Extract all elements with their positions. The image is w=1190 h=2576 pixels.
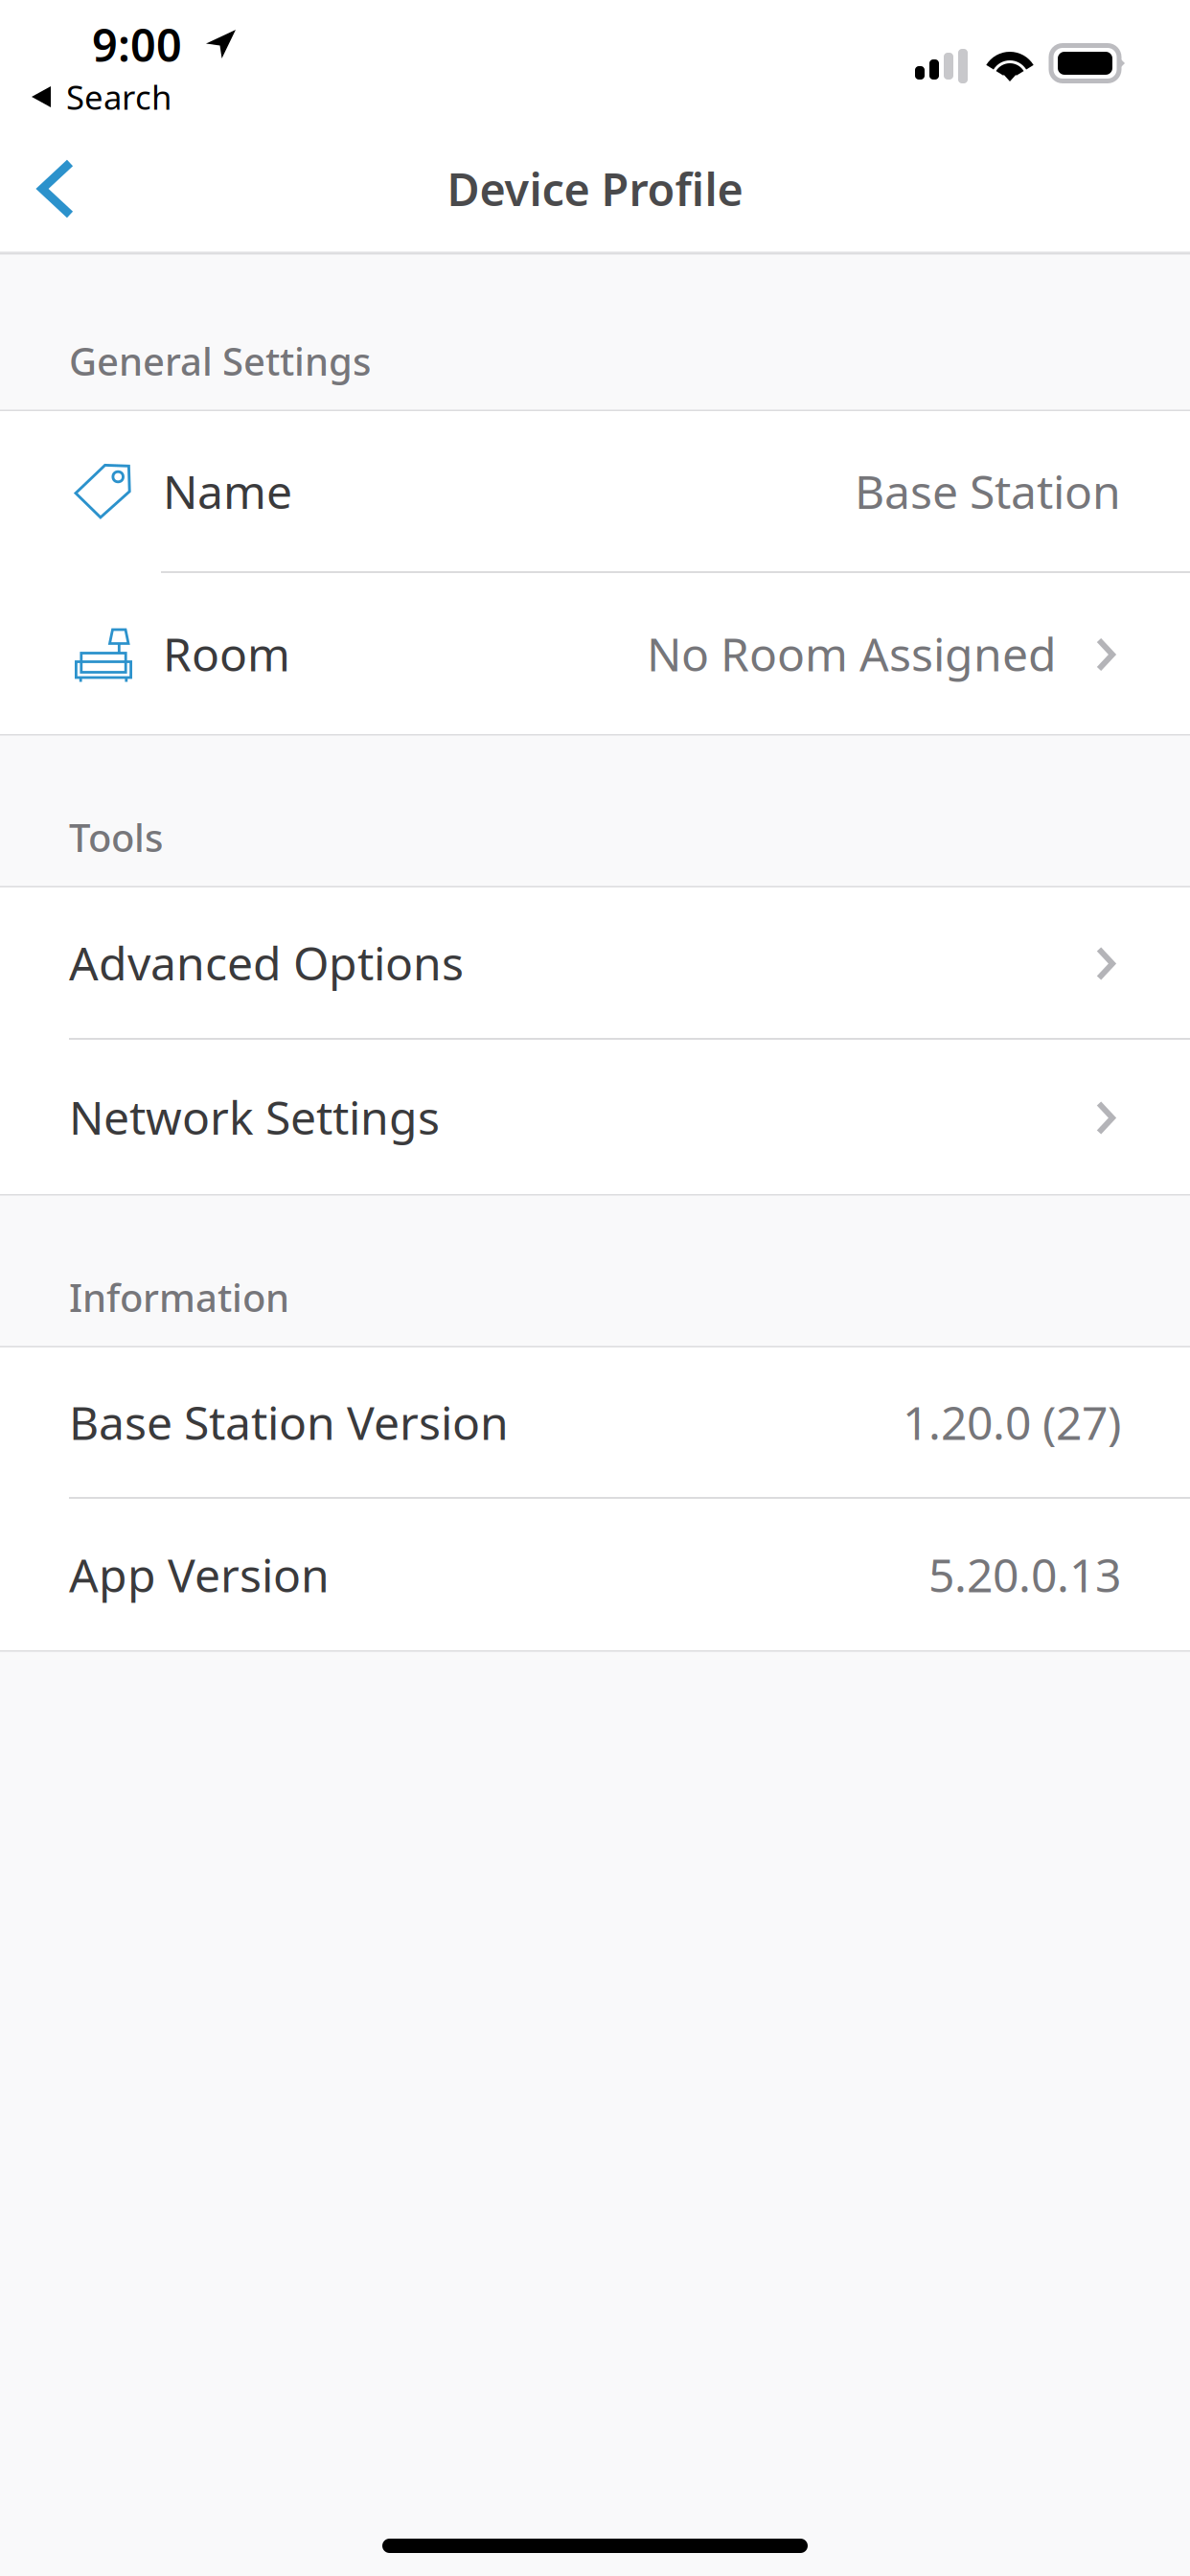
button[interactable]: Advanced Options [0,887,1190,1038]
staticText: General Settings [69,335,371,386]
staticText: Room [163,623,290,684]
staticText: Information [69,1272,289,1322]
staticText: 9:00 [92,15,182,74]
staticText: Name [163,461,292,522]
button[interactable]: Network Settings [0,1040,1190,1194]
button[interactable]: Name [0,411,1190,571]
staticText: Base Station Version [69,1392,509,1453]
staticText: Network Settings [69,1086,440,1147]
button[interactable]: Back [0,125,111,253]
button[interactable]: Room [0,573,1190,734]
staticText: Tools [69,812,163,862]
staticText: Advanced Options [69,932,464,993]
staticText: 1.20.0 (27) [903,1392,1121,1453]
staticText: Device Profile [447,159,743,218]
staticText: App Version [69,1544,330,1605]
staticText: No Room Assigned [647,623,1057,684]
staticText: 5.20.0.13 [928,1544,1121,1605]
staticText: Base Station [855,461,1121,522]
staticText: Search [66,75,172,119]
